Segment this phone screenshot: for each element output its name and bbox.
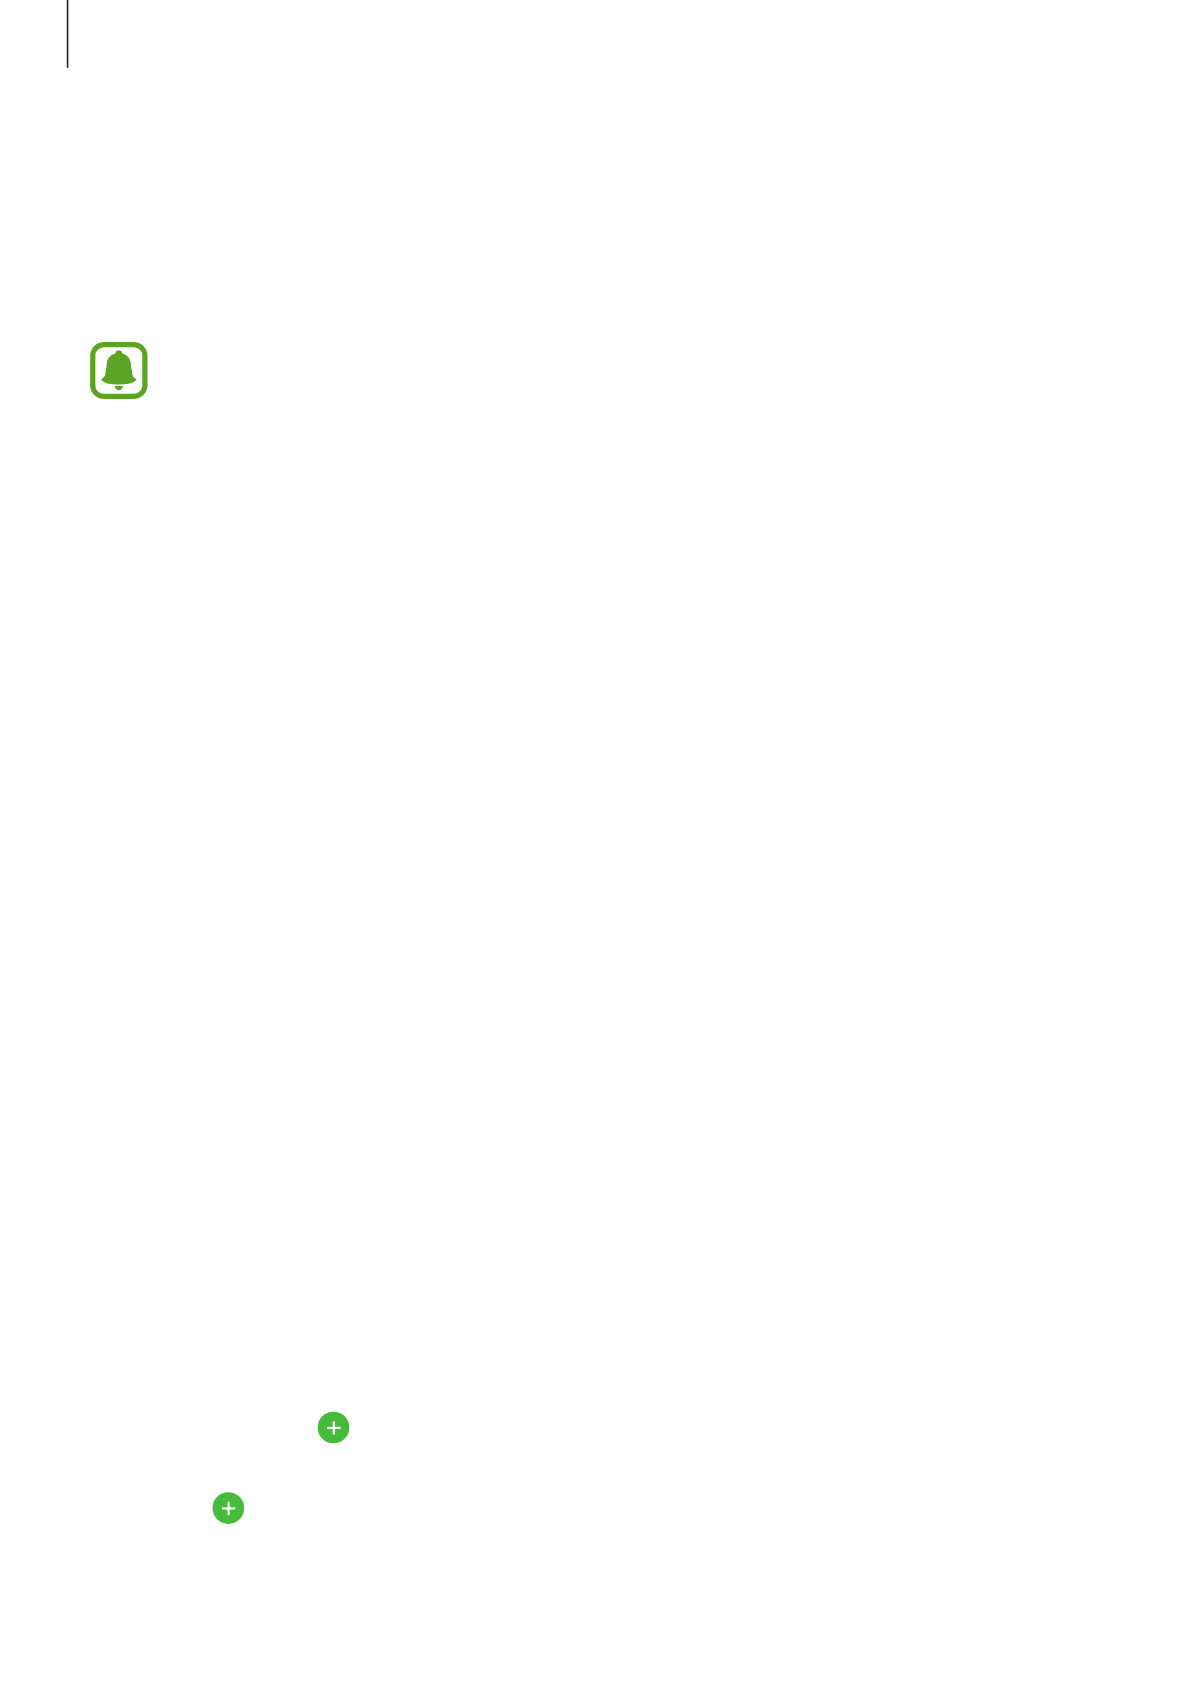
button[interactable]: Add [213,1492,245,1524]
button[interactable]: Add [318,1412,350,1444]
button[interactable]: Notifications [90,342,147,399]
